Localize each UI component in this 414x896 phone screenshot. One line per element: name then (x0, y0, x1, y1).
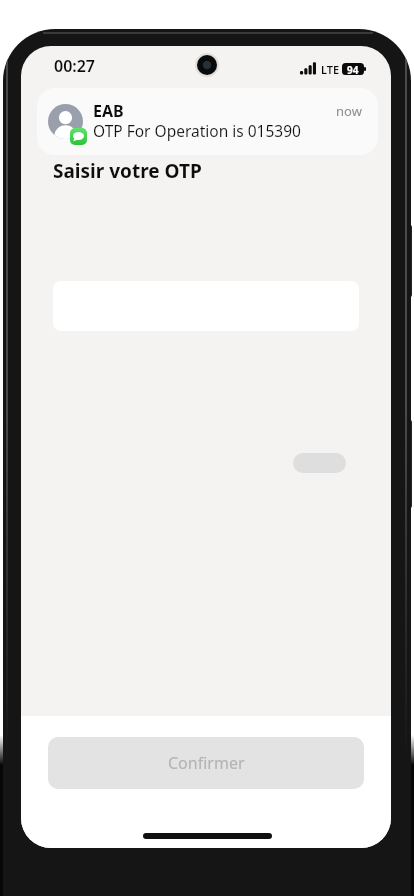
staticText: EAB (93, 100, 124, 122)
staticText: LTE (321, 62, 340, 77)
button[interactable]: EAB (37, 88, 378, 155)
staticText: now (336, 102, 362, 120)
staticText: Confirmer (168, 752, 245, 774)
staticText: OTP For Operation is 015390 (93, 120, 301, 141)
staticText: 00:27 (54, 55, 96, 77)
button[interactable] (293, 453, 346, 473)
staticText: 94 (347, 63, 359, 75)
button[interactable]: Confirmer (48, 737, 364, 789)
staticText: Saisir votre OTP (53, 158, 202, 184)
